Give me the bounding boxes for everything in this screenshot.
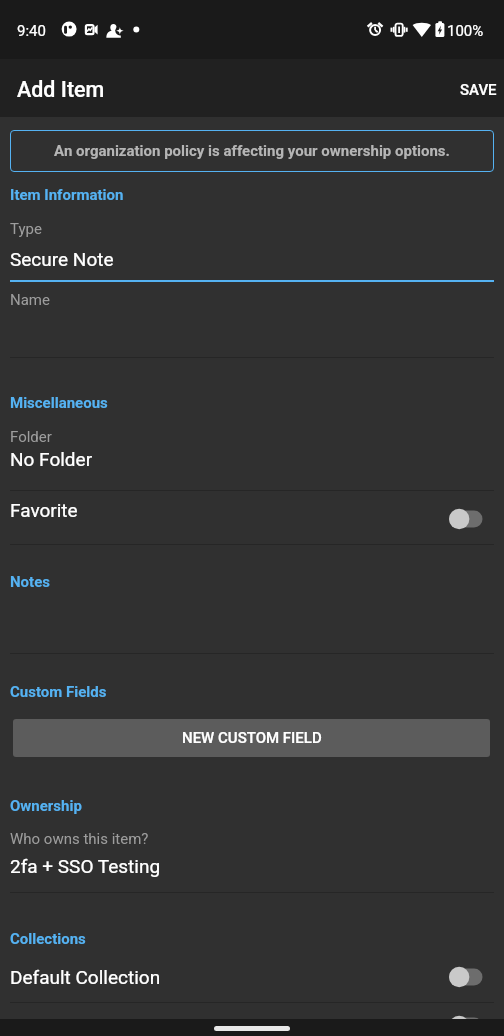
staticText: 9:40: [17, 22, 46, 40]
button[interactable]: Default Collection: [0, 958, 504, 1011]
staticText: An organization policy is affecting your…: [54, 142, 450, 160]
button[interactable]: NEW CUSTOM FIELD: [13, 719, 490, 757]
staticText: Miscellaneous: [10, 394, 108, 412]
staticText: SAVE: [460, 81, 497, 99]
staticText: Who owns this item?: [10, 830, 149, 848]
staticText: Ownership: [10, 797, 82, 815]
staticText: Item Information: [10, 186, 124, 204]
staticText: NEW CUSTOM FIELD: [182, 729, 322, 747]
staticText: 100%: [447, 22, 484, 40]
button[interactable]: SAVE: [452, 65, 504, 115]
staticText: 2fa + SSO Testing: [10, 855, 161, 877]
staticText: Custom Fields: [10, 683, 107, 701]
button[interactable]: Favorite: [0, 491, 504, 544]
button[interactable]: Other Collection: [0, 1007, 504, 1036]
staticText: Name: [10, 291, 50, 309]
staticText: Folder: [10, 428, 52, 446]
staticText: Collections: [10, 930, 86, 948]
staticText: Type: [10, 220, 42, 238]
staticText: Secure Note: [10, 248, 114, 270]
staticText: No Folder: [10, 448, 93, 470]
staticText: Notes: [10, 573, 50, 591]
staticText: Default Collection: [10, 966, 161, 988]
staticText: Add Item: [17, 77, 105, 102]
staticText: Favorite: [10, 499, 78, 521]
